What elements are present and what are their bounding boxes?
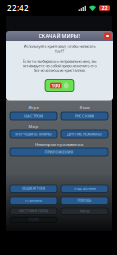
button[interactable]: ДРУГИЕ РЕЖИМЫ [61, 130, 108, 138]
staticText: ещё? [54, 48, 64, 53]
staticText: СКАЧАЙ МИРЫ! [38, 32, 80, 40]
button[interactable]: ПРИЛОЖЕНИЯ [10, 148, 108, 156]
button[interactable]: ОПЦИИ [10, 217, 57, 222]
staticText: Используйте криптовал, чтобы написать [23, 44, 95, 49]
staticText: Если ты выбираешь неправильно имя, вы [22, 59, 96, 64]
staticText: ОБЩИЕ ИГРОКИ [22, 187, 45, 190]
button[interactable]: 100 [45, 79, 74, 91]
staticText: Мир [28, 124, 38, 129]
button[interactable]: УЛУЧШИТЬ МИРЫ [10, 130, 57, 138]
staticText: УСТАНОВКА [25, 199, 42, 202]
staticText: активируете на собой право изменить его [22, 63, 96, 68]
staticText: ПРЕДСТАВЛЕНИЕ [73, 187, 95, 190]
button[interactable]: ОБЩИЕ ИГРОКИ [10, 185, 57, 192]
staticText: без исчезающие кристаллов. [33, 68, 85, 73]
staticText: РУССКИЙ [75, 113, 94, 119]
staticText: Язык [79, 105, 89, 110]
staticText: Некоторые приложения [35, 142, 83, 147]
staticText: ПОМОЩЬ [77, 199, 91, 202]
staticText: Игра [28, 105, 38, 110]
staticText: ВЫХОД [79, 209, 89, 213]
button[interactable]: ВЫХОД [61, 208, 108, 214]
staticText: 100 [51, 82, 60, 89]
button[interactable]: УСТАНОВКА [10, 197, 57, 204]
staticText: 22:42 [7, 3, 29, 13]
staticText: НАСТРОЙКИ ЗВУКА [19, 209, 48, 213]
staticText: УЛУЧШИТЬ МИРЫ [15, 131, 52, 137]
staticText: ОПЦИИ [28, 218, 38, 221]
staticText: ПРИЛОЖЕНИЯ [44, 149, 73, 155]
button[interactable]: ПОМОЩЬ [61, 197, 108, 204]
button[interactable]: Закрыть [104, 32, 111, 39]
button[interactable]: ПРЕДСТАВЛЕНИЕ [61, 185, 108, 192]
staticText: НАСТРОЙ [24, 113, 43, 119]
button[interactable]: НАСТРОЙКИ ЗВУКА [10, 208, 57, 214]
staticText: 22 [101, 4, 107, 12]
button[interactable]: РУССКИЙ [61, 112, 108, 120]
staticText: ДРУГИЕ РЕЖИМЫ [67, 131, 102, 137]
button[interactable]: НАСТРОЙ [10, 112, 57, 120]
